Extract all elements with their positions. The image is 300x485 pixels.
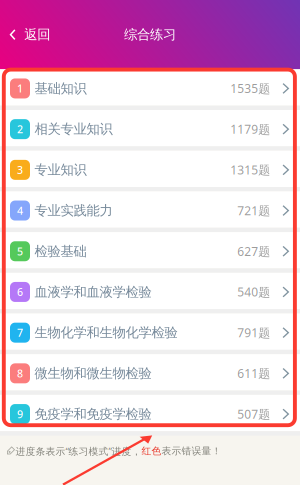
staticText: 免疫学和免疫学检验	[34, 406, 151, 422]
staticText: 540题	[237, 284, 270, 300]
staticText: 8	[17, 366, 23, 380]
staticText: 1179题	[230, 121, 270, 137]
staticText: 进度条表示“练习模式”进度，	[16, 444, 142, 458]
staticText: 9	[17, 407, 23, 421]
button[interactable]: 5	[0, 232, 300, 273]
staticText: 检验基础	[34, 243, 86, 259]
button[interactable]: 1	[0, 69, 300, 110]
staticText: 相关专业知识	[34, 121, 112, 137]
button[interactable]: 8	[0, 354, 300, 395]
staticText: 专业知识	[34, 162, 86, 178]
staticText: 3	[17, 163, 23, 177]
staticText: 7	[17, 326, 23, 340]
staticText: 791题	[237, 325, 270, 341]
button[interactable]: 3	[0, 151, 300, 191]
staticText: 表示错误量！	[162, 445, 222, 457]
staticText: 专业实践能力	[34, 202, 112, 219]
staticText: 5	[17, 244, 23, 258]
staticText: 综合练习	[124, 26, 176, 43]
staticText: 721题	[237, 203, 270, 218]
staticText: 微生物和微生物检验	[34, 365, 151, 382]
button[interactable]: 返回	[0, 18, 60, 52]
staticText: 红色	[142, 445, 162, 457]
button[interactable]: 9	[0, 395, 300, 436]
staticText: 1315题	[230, 162, 270, 178]
button[interactable]: 6	[0, 273, 300, 313]
staticText: 6	[17, 285, 23, 299]
staticText: 生物化学和生物化学检验	[34, 324, 177, 341]
staticText: 基础知识	[34, 80, 86, 97]
staticText: 611题	[237, 365, 270, 381]
button[interactable]: 2	[0, 110, 300, 151]
staticText: 1	[17, 81, 23, 96]
staticText: 血液学和血液学检验	[34, 284, 151, 300]
staticText: 507题	[237, 406, 270, 422]
button[interactable]: 4	[0, 191, 300, 232]
button[interactable]: 7	[0, 313, 300, 354]
staticText: 627题	[237, 243, 270, 259]
staticText: 2	[17, 122, 23, 136]
staticText: 4	[17, 203, 23, 218]
staticText: 1535题	[230, 80, 270, 96]
staticText: 返回	[24, 26, 50, 43]
